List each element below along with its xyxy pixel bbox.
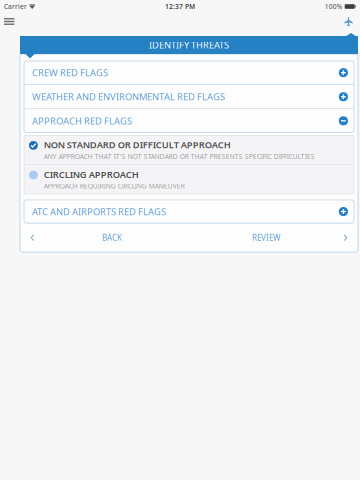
button[interactable]: CIRCLING APPROACH <box>24 165 354 194</box>
staticText: REVIEW <box>252 232 280 243</box>
button[interactable]: NON STANDARD OR DIFFICULT APPROACH <box>24 135 354 164</box>
staticText: BACK <box>102 232 122 243</box>
staticText: Carrier <box>4 2 27 11</box>
staticText: ATC AND AIRPORTS RED FLAGS <box>32 205 166 218</box>
staticText: WEATHER AND ENVIRONMENTAL RED FLAGS <box>32 91 225 103</box>
button[interactable]: WEATHER AND ENVIRONMENTAL RED FLAGS <box>24 85 354 108</box>
staticText: APPROACH REQUIRING CIRCLING MANEUVER <box>44 181 185 190</box>
staticText: CIRCLING APPROACH <box>44 168 139 180</box>
staticText: IDENTIFY THREATS <box>149 39 229 51</box>
button[interactable]: CREW RED FLAGS <box>24 61 354 84</box>
staticText: 100% <box>325 2 343 11</box>
staticText: ANY APPROACH THAT IT'S NOT STANDARD OR T… <box>44 152 315 161</box>
button[interactable]: APPROACH RED FLAGS <box>24 109 354 132</box>
button[interactable]: BACK <box>30 226 189 249</box>
button[interactable]: ATC AND AIRPORTS RED FLAGS <box>24 200 354 223</box>
staticText: APPROACH RED FLAGS <box>32 115 132 127</box>
button[interactable]: Menu <box>0 15 22 28</box>
staticText: NON STANDARD OR DIFFICULT APPROACH <box>44 138 231 151</box>
button[interactable]: Flights <box>339 15 360 28</box>
button[interactable]: REVIEW <box>189 226 348 249</box>
staticText: CREW RED FLAGS <box>32 66 108 79</box>
staticText: 12:37 PM <box>165 2 195 11</box>
